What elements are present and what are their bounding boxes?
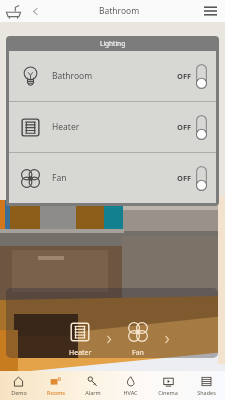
button[interactable]: Fan [116, 320, 160, 358]
button[interactable]: Menu [195, 0, 225, 22]
button[interactable]: Alarm [74, 371, 111, 400]
button[interactable]: HVAC [111, 371, 149, 400]
staticText: Fan [52, 172, 67, 184]
button[interactable]: Shades [187, 371, 225, 400]
staticText: Demo [11, 389, 27, 396]
button[interactable]: Back [26, 0, 44, 22]
staticText: HVAC [123, 389, 138, 396]
staticText: Lighting [100, 39, 126, 48]
button[interactable]: Next [102, 324, 116, 354]
staticText: Bathroom [99, 5, 140, 17]
button[interactable]: Rooms [37, 371, 74, 400]
button[interactable]: Heater [9, 102, 216, 152]
staticText: OFF [177, 173, 192, 183]
staticText: Bathroom [52, 70, 93, 82]
button[interactable]: Bathroom [9, 51, 216, 101]
staticText: Rooms [47, 389, 65, 396]
staticText: Cinema [158, 389, 178, 396]
button[interactable]: Room icon [0, 0, 26, 22]
button[interactable]: Demo [0, 371, 37, 400]
staticText: Heater [52, 121, 80, 133]
staticText: Shades [197, 389, 216, 396]
button[interactable]: Fan [9, 153, 216, 203]
button[interactable]: Heater [58, 320, 102, 358]
button[interactable]: Cinema [149, 371, 187, 400]
staticText: Fan [132, 348, 144, 358]
button[interactable]: More [160, 324, 174, 354]
staticText: OFF [177, 122, 192, 132]
staticText: Heater [69, 348, 92, 358]
staticText: Alarm [85, 389, 101, 396]
staticText: OFF [177, 71, 192, 81]
